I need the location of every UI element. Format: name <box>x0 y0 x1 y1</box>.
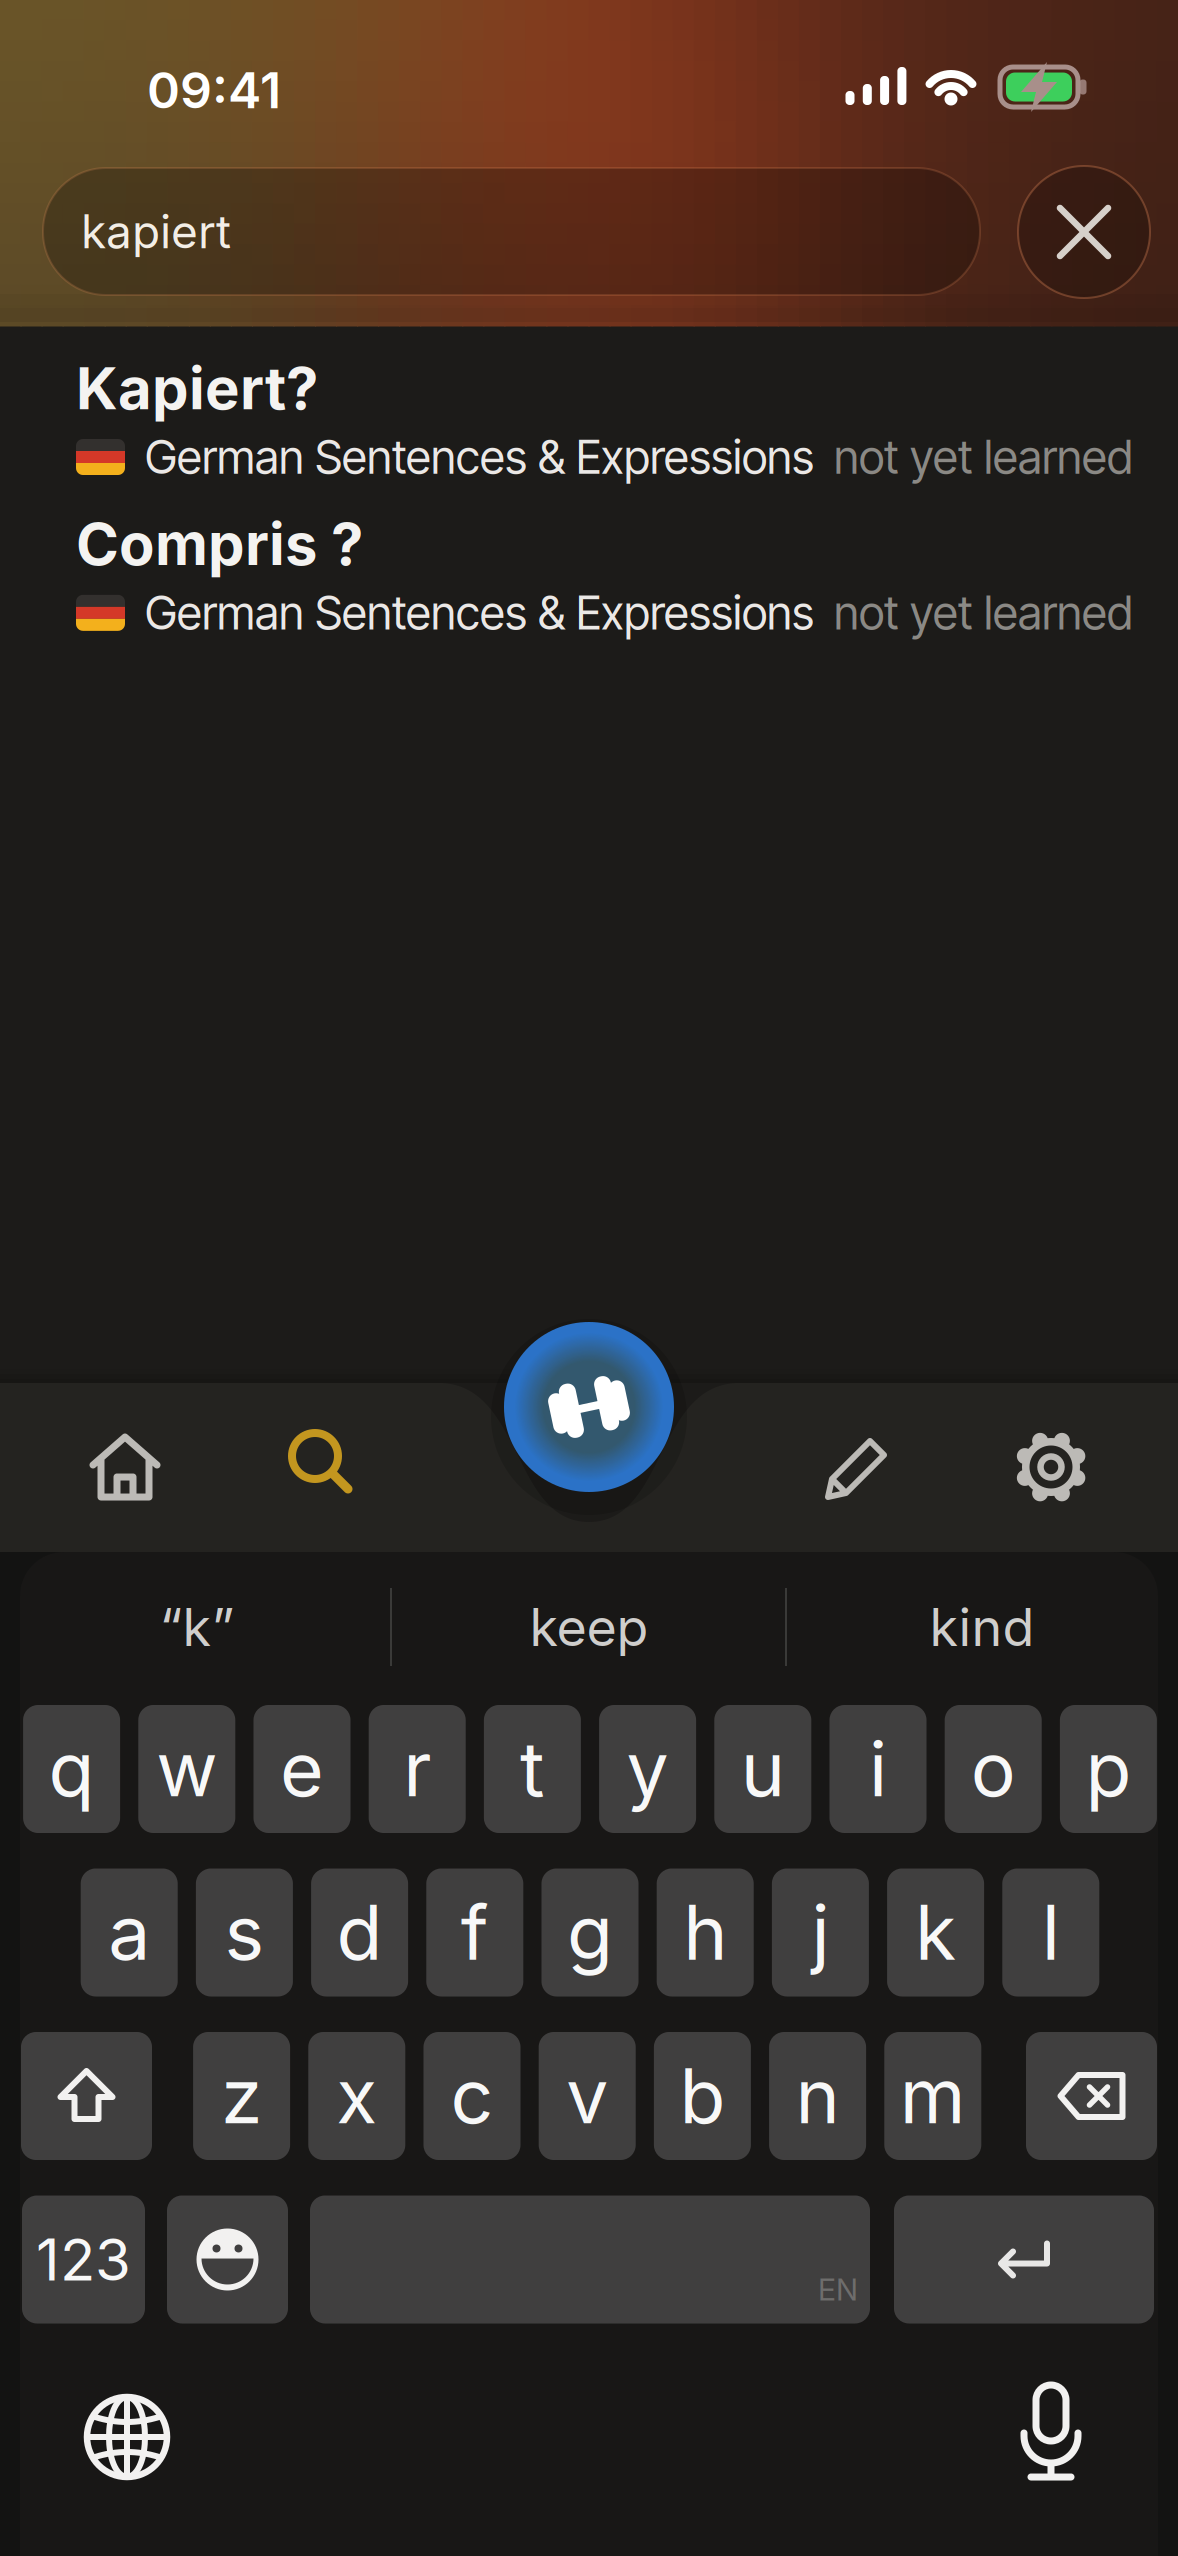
staticText: x <box>336 2051 377 2141</box>
button[interactable]: Next keyboard <box>67 2377 187 2497</box>
button[interactable]: kind <box>797 1577 1167 1677</box>
button[interactable]: j <box>772 1868 869 1996</box>
button[interactable]: y <box>599 1705 696 1833</box>
staticText: e <box>280 1724 324 1814</box>
staticText: kapiert <box>81 204 231 259</box>
staticText: German Sentences & Expressions <box>145 585 814 641</box>
staticText: u <box>741 1724 785 1814</box>
button[interactable]: h <box>657 1868 754 1996</box>
button[interactable]: u <box>714 1705 811 1833</box>
staticText: not yet learned <box>834 429 1133 485</box>
button[interactable]: o <box>945 1705 1042 1833</box>
button[interactable]: Kapiert? <box>76 353 1178 485</box>
staticText: g <box>567 1887 613 1978</box>
button[interactable]: b <box>654 2032 751 2160</box>
staticText: kind <box>929 1595 1034 1658</box>
button[interactable]: c <box>423 2032 520 2160</box>
button[interactable]: Clear search <box>1018 166 1150 298</box>
button[interactable]: s <box>196 1868 293 1996</box>
button[interactable]: 123 <box>22 2195 145 2323</box>
staticText: q <box>49 1724 95 1814</box>
staticText: a <box>108 1887 150 1978</box>
staticText: b <box>679 2051 725 2141</box>
button[interactable]: w <box>138 1705 235 1833</box>
button[interactable]: keep <box>399 1577 779 1677</box>
staticText: j <box>811 1887 829 1978</box>
staticText: 123 <box>36 2224 131 2295</box>
staticText: k <box>915 1887 956 1978</box>
staticText: i <box>869 1724 887 1814</box>
button[interactable]: Home <box>70 1412 180 1522</box>
staticText: z <box>221 2051 262 2141</box>
button[interactable]: p <box>1060 1705 1157 1833</box>
staticText: Compris ? <box>76 509 363 579</box>
staticText: n <box>796 2051 840 2141</box>
staticText: r <box>403 1724 431 1814</box>
staticText: t <box>520 1724 545 1814</box>
staticText: d <box>337 1887 383 1978</box>
button[interactable]: z <box>193 2032 290 2160</box>
button[interactable]: Space <box>310 2195 870 2323</box>
button[interactable]: k <box>887 1868 984 1996</box>
staticText: Kapiert? <box>76 353 318 423</box>
staticText: o <box>971 1724 1016 1814</box>
staticText: p <box>1085 1724 1131 1814</box>
button[interactable]: Delete <box>1026 2032 1157 2160</box>
button[interactable]: m <box>884 2032 981 2160</box>
button[interactable]: Search <box>265 1406 375 1516</box>
button[interactable]: Dictation <box>991 2372 1111 2492</box>
staticText: EN <box>818 2271 858 2308</box>
button[interactable]: Settings <box>996 1412 1106 1522</box>
button[interactable]: g <box>541 1868 638 1996</box>
button[interactable]: “k” <box>12 1577 382 1677</box>
staticText: h <box>683 1887 727 1978</box>
staticText: “k” <box>159 1595 234 1658</box>
staticText: v <box>566 2051 608 2141</box>
staticText: f <box>461 1887 489 1978</box>
button[interactable]: x <box>308 2032 405 2160</box>
staticText: not yet learned <box>834 585 1133 641</box>
staticText: y <box>627 1724 669 1814</box>
button[interactable]: Shift <box>21 2032 152 2160</box>
staticText: m <box>900 2051 966 2141</box>
staticText: w <box>156 1724 217 1814</box>
button[interactable]: Compris ? <box>76 509 1178 641</box>
button[interactable]: Practice <box>504 1322 674 1492</box>
button[interactable]: v <box>539 2032 636 2160</box>
staticText: s <box>224 1887 264 1978</box>
button[interactable]: Emoji <box>167 2195 288 2323</box>
button[interactable]: Return <box>894 2195 1154 2323</box>
staticText: l <box>1042 1887 1060 1978</box>
button[interactable]: i <box>829 1705 926 1833</box>
button[interactable]: e <box>253 1705 350 1833</box>
button[interactable]: n <box>769 2032 866 2160</box>
button[interactable]: d <box>311 1868 408 1996</box>
button[interactable]: f <box>426 1868 523 1996</box>
button[interactable]: q <box>23 1705 120 1833</box>
button[interactable]: kapiert <box>43 168 980 295</box>
button[interactable]: a <box>81 1868 178 1996</box>
button[interactable]: r <box>369 1705 466 1833</box>
staticText: 09:41 <box>147 60 281 120</box>
staticText: German Sentences & Expressions <box>145 429 814 485</box>
button[interactable]: Edit <box>803 1412 913 1522</box>
staticText: keep <box>529 1595 648 1658</box>
button[interactable]: t <box>484 1705 581 1833</box>
button[interactable]: l <box>1002 1868 1099 1996</box>
staticText: c <box>450 2051 493 2141</box>
